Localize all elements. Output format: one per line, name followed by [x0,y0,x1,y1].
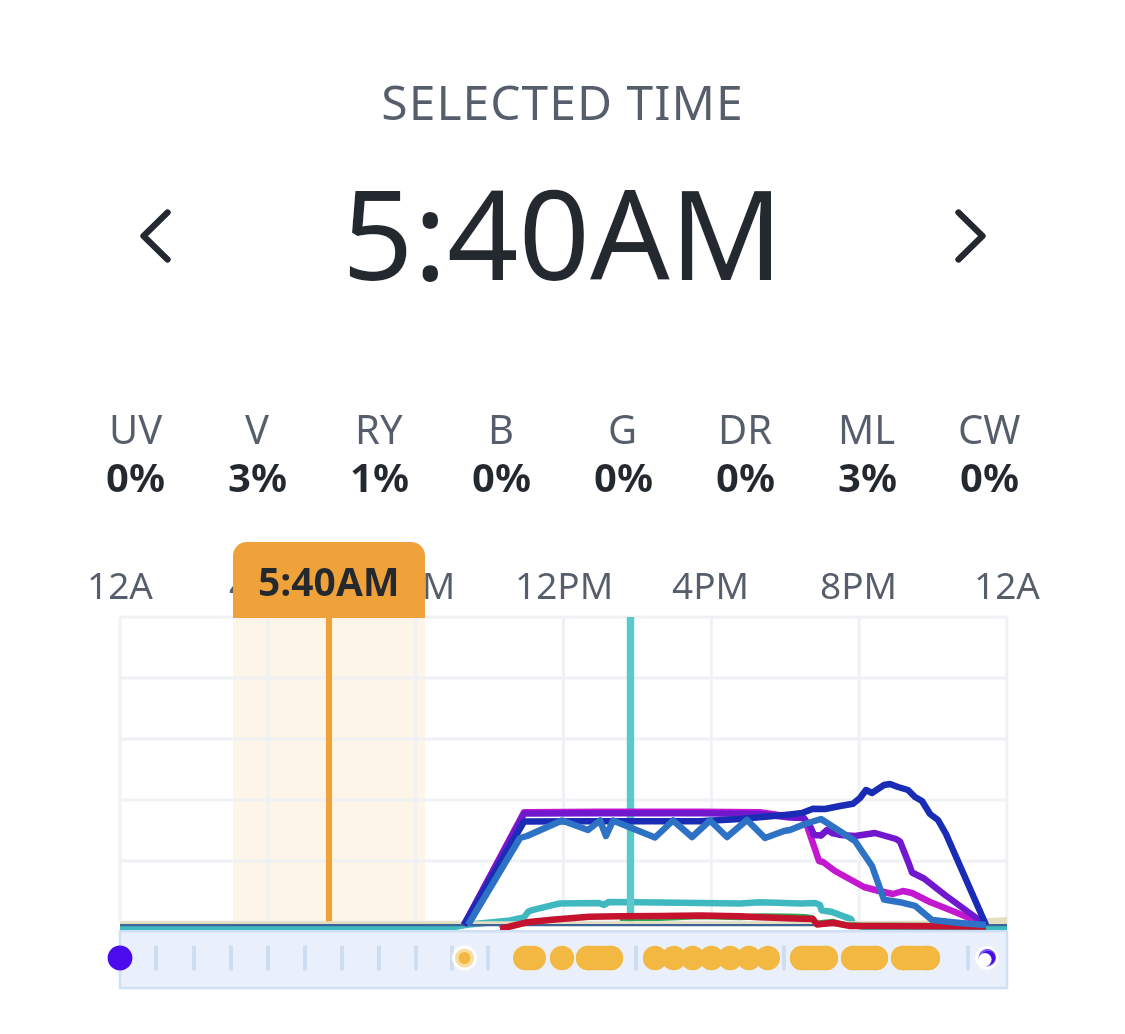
button[interactable]: Light exposure chart [120,617,1007,922]
button[interactable]: G [562,401,684,509]
staticText: 4PM [672,559,750,609]
button[interactable]: V [196,401,318,509]
staticText: 4AM [229,559,308,609]
staticText: 0% [716,449,775,503]
staticText: 5:40AM [205,146,920,306]
staticText: ML [838,401,896,455]
staticText: 0% [106,449,165,503]
staticText: B [488,401,514,455]
staticText: 8PM [820,559,898,609]
staticText: 12PM [515,559,614,609]
staticText: 3% [838,449,897,503]
button[interactable]: B [440,401,562,509]
button[interactable]: 5:40AM [233,542,425,618]
staticText: 3% [228,449,287,503]
button[interactable]: ML [806,401,928,509]
button[interactable]: UV [75,401,196,509]
staticText: 5:40AM [258,554,400,607]
staticText: SELECTED TIME [0,69,1125,134]
staticText: 0% [472,449,531,503]
button[interactable]: Daily events timeline [120,931,1007,988]
staticText: DR [718,401,773,455]
staticText: 1% [350,449,409,503]
staticText: G [608,401,638,455]
staticText: RY [355,401,403,455]
button[interactable]: DR [684,401,806,509]
button[interactable]: CW [928,401,1050,509]
staticText: 8AM [377,559,456,609]
staticText: UV [109,401,163,455]
staticText: 12A [974,559,1040,609]
button[interactable]: Next time [920,186,1020,286]
staticText: 0% [594,449,653,503]
staticText: CW [958,401,1021,455]
staticText: 0% [960,449,1019,503]
button[interactable]: RY [318,401,440,509]
staticText: 12A [87,559,153,609]
button[interactable]: Previous time [105,186,205,286]
staticText: V [245,401,269,455]
